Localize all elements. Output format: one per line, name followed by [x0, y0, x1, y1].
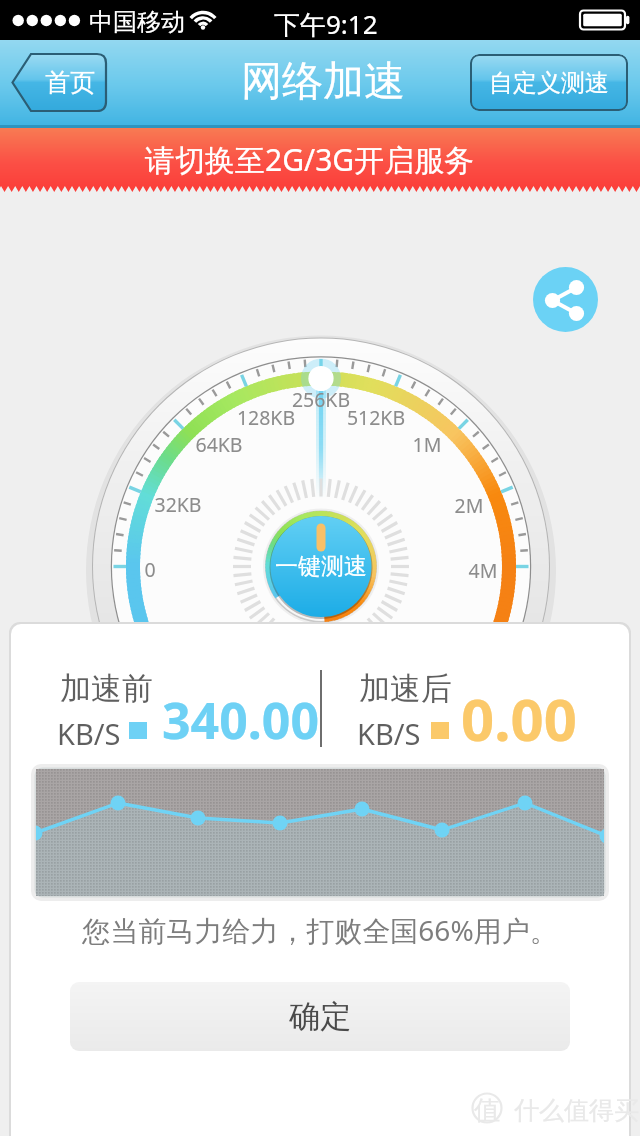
button[interactable]: 确定 — [70, 982, 570, 1051]
staticText: 0.00 — [461, 679, 577, 758]
staticText: 下午9:12 — [274, 6, 378, 42]
staticText: 加速前 — [60, 669, 153, 708]
button[interactable]: Share — [533, 267, 598, 332]
staticText: 请切换至2G/3G开启服务 — [145, 139, 475, 180]
staticText: 512KB — [326, 404, 426, 431]
staticText: 您当前马力给力，打败全国66%用户。 — [0, 911, 640, 949]
staticText: 值 — [474, 1094, 500, 1127]
staticText: KB/S — [357, 714, 421, 753]
staticText: 网络加速 — [241, 56, 405, 108]
staticText: 64KB — [169, 431, 269, 458]
staticText: 什么值得买 — [514, 1095, 639, 1126]
staticText: 加速后 — [359, 669, 452, 708]
button[interactable]: 自定义测速 — [470, 54, 628, 111]
staticText: 340.00 — [162, 686, 320, 754]
staticText: 128KB — [216, 404, 316, 431]
staticText: KB/S — [57, 714, 121, 753]
staticText: 1M — [377, 431, 477, 458]
staticText: 0 — [100, 556, 200, 583]
staticText: 自定义测速 — [489, 68, 609, 98]
staticText: 一键测速 — [261, 552, 381, 581]
staticText: 2M — [419, 492, 519, 519]
staticText: 4M — [433, 557, 533, 584]
staticText: 确定 — [289, 997, 351, 1036]
staticText: 首页 — [45, 67, 95, 98]
staticText: 中国移动 — [89, 7, 185, 37]
staticText: 256KB — [271, 386, 371, 413]
staticText: 32KB — [128, 491, 228, 518]
button[interactable]: 首页 — [11, 54, 106, 111]
